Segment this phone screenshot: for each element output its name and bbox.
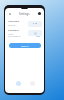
staticText: johndoe xyxy=(8,24,16,27)
button[interactable]: Profile xyxy=(37,11,42,16)
button[interactable]: Sign in with Google xyxy=(16,81,21,86)
button[interactable]: Password xyxy=(5,29,44,36)
button[interactable]: Username xyxy=(5,20,44,27)
button[interactable]: Back xyxy=(7,11,12,16)
staticText: • • • xyxy=(33,22,38,26)
button[interactable]: Sign in xyxy=(9,43,41,48)
staticText: Stay signed in xyxy=(8,35,21,38)
staticText: Username xyxy=(8,20,20,23)
staticText: Settings xyxy=(19,12,30,16)
staticText: Help xyxy=(36,35,41,38)
staticText: Password xyxy=(8,29,19,32)
staticText: Sign in xyxy=(21,44,29,47)
staticText: secret xyxy=(8,33,14,36)
button[interactable]: Sign in with Apple xyxy=(30,81,35,86)
